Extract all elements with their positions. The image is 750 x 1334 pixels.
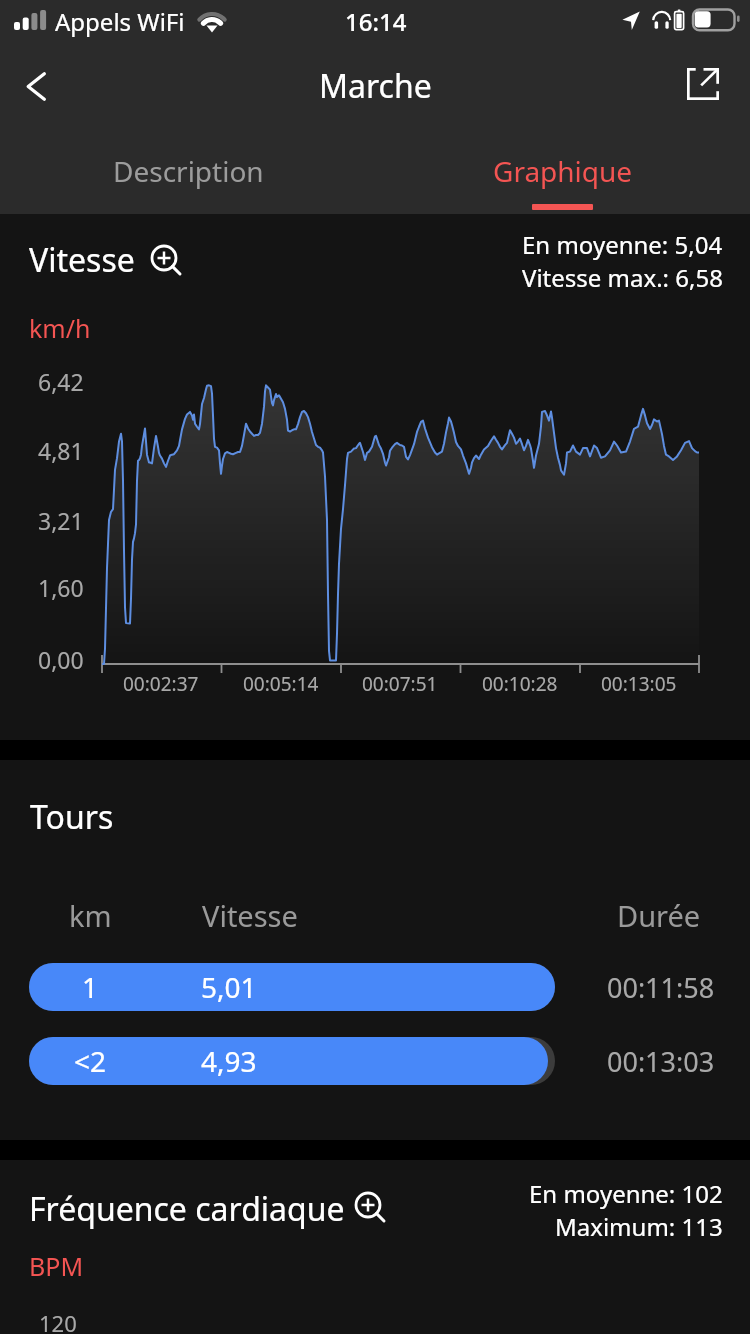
staticText: 1,60 [38, 572, 84, 603]
staticText: 4,81 [38, 435, 84, 466]
staticText: Marche [319, 64, 432, 108]
button[interactable]: Description [0, 122, 375, 214]
staticText: BPM [29, 1249, 84, 1283]
staticText: 5,01 [201, 968, 257, 1006]
staticText: km [69, 896, 112, 935]
staticText: En moyenne: 102 [529, 1177, 723, 1210]
staticText: 4,93 [201, 1042, 257, 1080]
staticText: Maximum: 113 [555, 1210, 723, 1243]
staticText: En moyenne: 5,04 [522, 228, 723, 261]
staticText: Vitesse [202, 896, 298, 935]
staticText: 0,00 [38, 644, 84, 675]
staticText: 00:07:51 [362, 671, 438, 697]
staticText: Graphique [493, 152, 633, 190]
button[interactable]: Agrandir [150, 244, 184, 278]
staticText: 3,21 [38, 505, 84, 536]
staticText: 00:13:05 [601, 671, 677, 697]
button[interactable]: <2 [0, 1037, 750, 1085]
staticText: Tours [30, 795, 114, 839]
staticText: Vitesse max.: 6,58 [522, 261, 723, 294]
staticText: <2 [74, 1042, 107, 1080]
staticText: Fréquence cardiaque [29, 1187, 345, 1231]
staticText: 00:02:37 [123, 671, 199, 697]
staticText: Appels WiFi [55, 5, 185, 38]
staticText: 16:14 [345, 5, 407, 38]
staticText: Durée [617, 896, 701, 935]
staticText: km/h [29, 311, 91, 345]
staticText: 120 [39, 1308, 77, 1334]
button[interactable]: Agrandir [354, 1191, 388, 1225]
staticText: 1 [82, 968, 99, 1006]
staticText: Description [113, 152, 264, 190]
staticText: 6,42 [38, 366, 84, 397]
staticText: 00:10:28 [482, 671, 558, 697]
button[interactable]: 1 [0, 963, 750, 1011]
staticText: Vitesse [29, 238, 135, 282]
staticText: 00:05:14 [243, 671, 319, 697]
button[interactable]: Back [0, 50, 70, 122]
button[interactable]: Share [663, 48, 743, 120]
staticText: 00:13:03 [607, 1043, 715, 1080]
staticText: 00:11:58 [607, 969, 715, 1006]
button[interactable]: Graphique [375, 122, 750, 214]
